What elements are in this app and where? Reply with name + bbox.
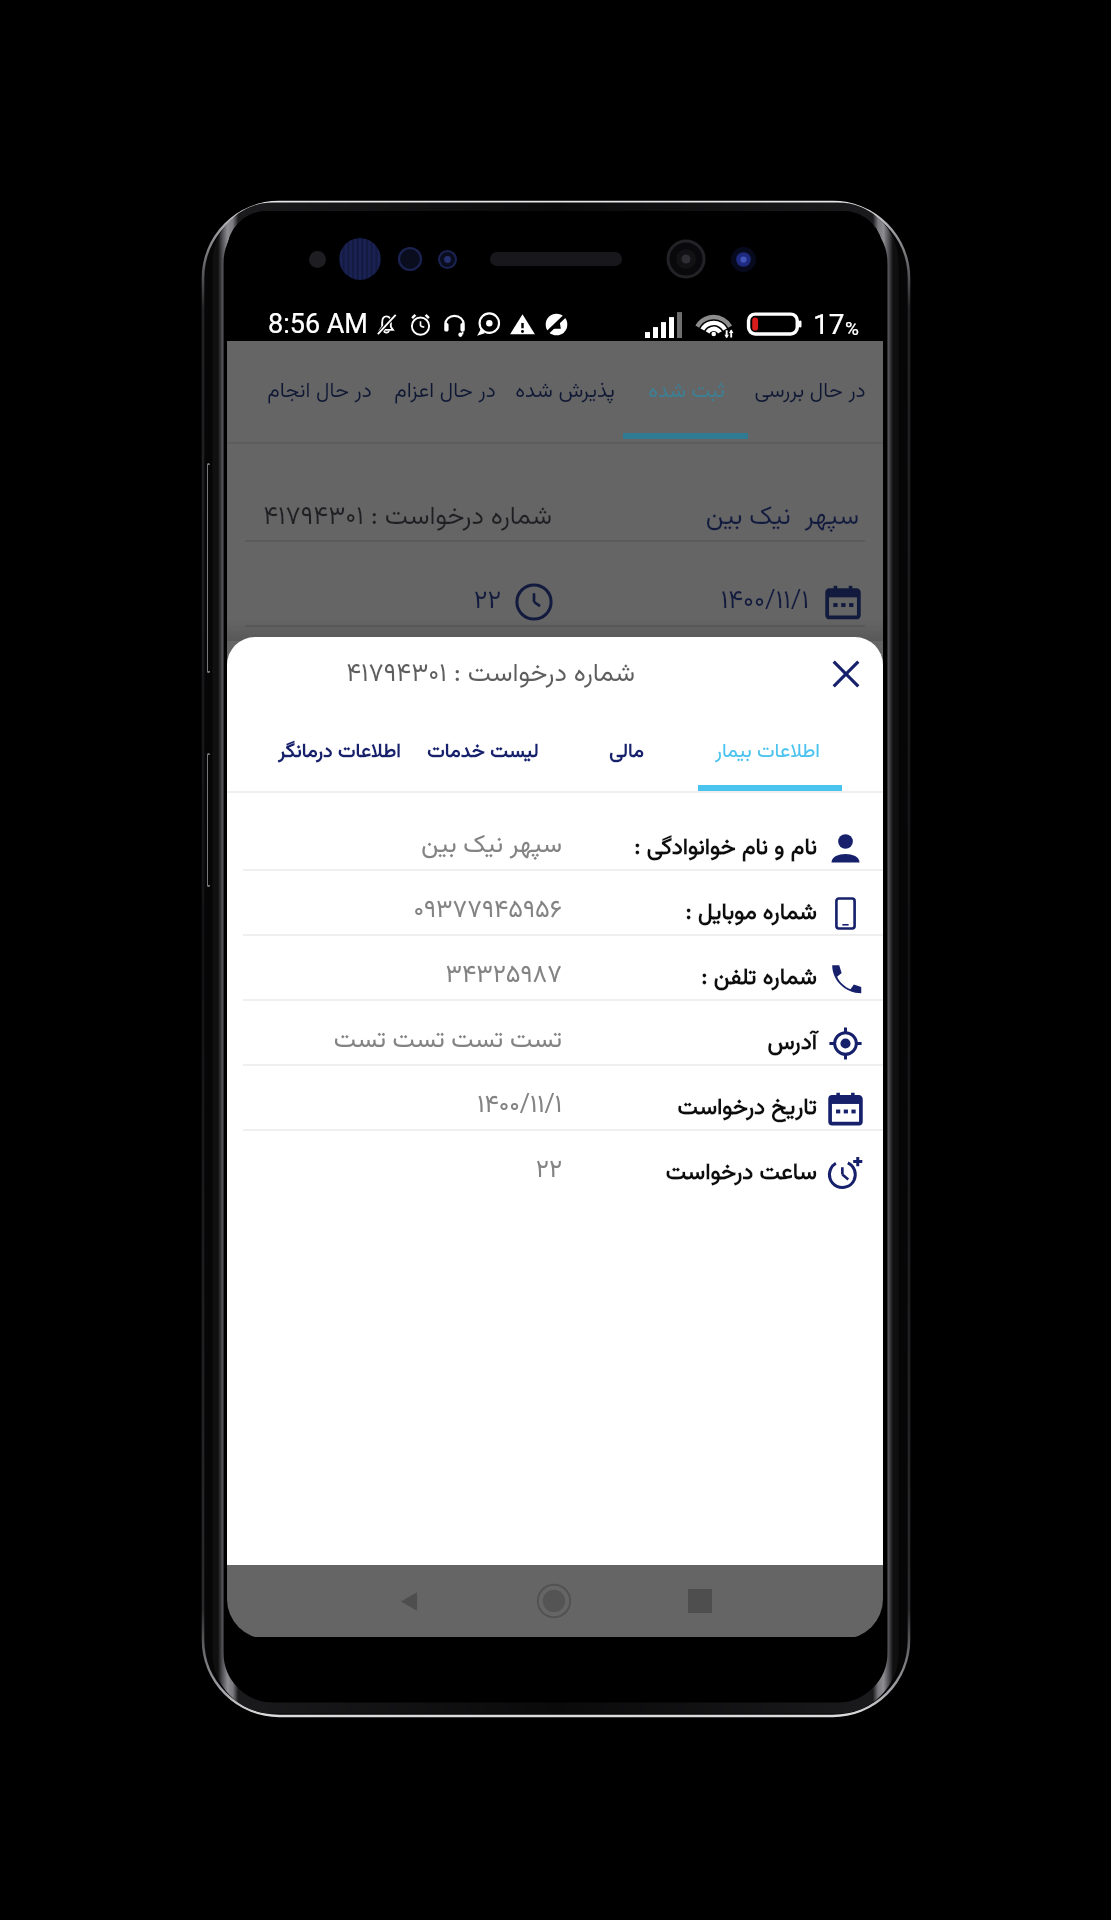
staticText: تاریخ درخواست — [677, 1090, 817, 1126]
button[interactable]: اطلاعات درمانگر — [270, 716, 408, 786]
staticText: شماره درخواست : ۴۱۷۹۴۳۰۱ — [263, 497, 552, 538]
staticText: ۲۲ — [535, 1151, 562, 1190]
staticText: شماره تلفن : — [701, 960, 817, 996]
staticText: ۰۹۳۷۷۹۴۵۹۵۶ — [413, 891, 562, 930]
staticText: تست تست تست تست — [333, 1021, 562, 1060]
staticText: نام و نام خوانوادگی : — [634, 830, 817, 866]
button[interactable]: آدرس — [227, 1001, 883, 1066]
button[interactable]: شماره موبایل : — [227, 871, 883, 936]
staticText: اطلاعات بیمار — [715, 736, 820, 767]
button[interactable]: پذیرش شده — [503, 347, 627, 435]
staticText: ساعت درخواست — [665, 1155, 817, 1191]
staticText: 8:56 AM — [268, 308, 368, 340]
staticText: شماره درخواست : ۴۱۷۹۴۳۰۱ — [346, 654, 635, 695]
button[interactable]: اطلاعات بیمار — [698, 716, 836, 786]
button[interactable]: Close — [818, 646, 874, 702]
staticText: آدرس — [767, 1025, 817, 1061]
button[interactable]: Home — [518, 1565, 590, 1637]
button[interactable]: لیست خدمات — [414, 716, 552, 786]
staticText: ۱۴۰۰/۱۱/۱ — [477, 1086, 562, 1125]
staticText: % — [845, 317, 859, 339]
staticText: لیست خدمات — [427, 736, 539, 767]
staticText: ۲۲ — [473, 581, 501, 622]
button[interactable]: در حال اعزام — [383, 347, 507, 435]
staticText: ۳۴۳۲۵۹۸۷ — [445, 956, 562, 995]
staticText: در حال بررسی — [754, 375, 866, 408]
staticText: در حال اعزام — [394, 375, 496, 408]
staticText: ثبت شده — [648, 375, 725, 408]
staticText: سپهر نیک بین — [421, 826, 562, 865]
staticText: سپهر نیک بین — [705, 497, 859, 538]
button[interactable]: Back — [373, 1565, 445, 1637]
button[interactable]: در حال بررسی — [748, 347, 872, 435]
staticText: در حال انجام — [267, 375, 372, 408]
staticText: مالی — [609, 736, 644, 767]
button[interactable]: در حال انجام — [257, 347, 381, 435]
staticText: 17 — [813, 308, 845, 341]
button[interactable]: شماره تلفن : — [227, 936, 883, 1001]
button[interactable]: نام و نام خوانوادگی : — [227, 793, 883, 871]
button[interactable]: مالی — [557, 716, 695, 786]
button[interactable]: Recents — [664, 1565, 736, 1637]
button[interactable]: سپهر نیک بین — [227, 444, 883, 627]
staticText: شماره موبایل : — [685, 895, 817, 931]
staticText: ۱۴۰۰/۱۱/۱ — [720, 581, 809, 622]
staticText: اطلاعات درمانگر — [278, 736, 401, 767]
button[interactable]: ساعت درخواست — [227, 1131, 883, 1194]
staticText: پذیرش شده — [515, 375, 615, 408]
button[interactable]: تاریخ درخواست — [227, 1066, 883, 1131]
button[interactable]: ثبت شده — [624, 347, 748, 435]
